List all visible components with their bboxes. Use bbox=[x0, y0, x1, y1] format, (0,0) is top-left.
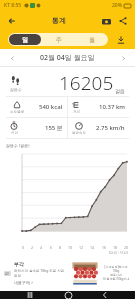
staticText: 걸음 bbox=[115, 88, 125, 94]
button[interactable]: 일 bbox=[9, 34, 41, 45]
staticText: 155 분 bbox=[45, 124, 63, 132]
staticText: 꽉찬사과 실속은 10kg 주문 사은 증정 bbox=[14, 268, 65, 278]
button[interactable]: Back bbox=[5, 14, 19, 28]
button[interactable]: 주 bbox=[43, 34, 74, 45]
staticText: 16205 bbox=[59, 70, 114, 96]
staticText: 20% bbox=[112, 2, 122, 9]
staticText: 부각 bbox=[14, 261, 24, 267]
staticText: 0 bbox=[22, 245, 25, 250]
staticText: 월 bbox=[89, 36, 95, 44]
staticText: 02월 04일 월요일 bbox=[40, 53, 95, 63]
staticText: 시간 bbox=[11, 131, 18, 135]
staticText: (단위 : 시간) bbox=[109, 250, 128, 255]
button[interactable]: Share bbox=[116, 14, 130, 28]
staticText: 12 bbox=[79, 245, 84, 250]
staticText: 2.75 km/h bbox=[96, 124, 125, 132]
button[interactable]: AD bbox=[0, 255, 135, 291]
button[interactable]: Back bbox=[97, 291, 113, 299]
staticText: 2 bbox=[31, 245, 34, 250]
staticText: 4 bbox=[40, 245, 43, 250]
button[interactable]: 시간 bbox=[6, 118, 67, 138]
staticText: AD bbox=[5, 272, 10, 276]
staticText: 20 bbox=[124, 245, 129, 250]
staticText: KT 8:55 bbox=[4, 2, 22, 9]
staticText: > bbox=[31, 280, 34, 285]
button[interactable]: Camera bbox=[99, 14, 113, 28]
staticText: 거리 bbox=[73, 110, 80, 114]
button[interactable]: Recents bbox=[22, 291, 38, 299]
staticText: 소모열량 bbox=[10, 110, 24, 114]
staticText: 6 bbox=[50, 245, 53, 250]
button[interactable]: Next day bbox=[117, 52, 129, 64]
button[interactable]: 평균속도 bbox=[68, 118, 129, 138]
staticText: 540 kcal bbox=[39, 103, 63, 111]
staticText: 10.37 km bbox=[99, 103, 125, 111]
button[interactable]: 월 bbox=[76, 34, 107, 45]
staticText: 10 bbox=[68, 245, 73, 250]
staticText: 주 bbox=[56, 36, 62, 44]
staticText: 16 bbox=[102, 245, 107, 250]
button[interactable]: Download bbox=[114, 33, 127, 46]
button[interactable]: Home bbox=[60, 291, 76, 299]
staticText: 8 bbox=[59, 245, 62, 250]
staticText: 통계 bbox=[52, 16, 66, 25]
staticText: 걸음수 bbox=[10, 87, 22, 92]
staticText: 내용구매 bbox=[14, 280, 30, 285]
button[interactable]: 소모열량 bbox=[6, 97, 67, 117]
staticText: 평균속도 bbox=[72, 131, 86, 135]
staticText: 일 bbox=[22, 36, 28, 44]
staticText: 14 bbox=[90, 245, 95, 250]
button[interactable]: 거리 bbox=[68, 97, 129, 117]
staticText: 18 bbox=[113, 245, 118, 250]
staticText: [사과농장]햇사과 10kg 영동사과 (주황색통)10kg이내 bbox=[101, 265, 131, 281]
staticText: 걸음수 (걸음) bbox=[6, 143, 30, 148]
button[interactable]: Previous day bbox=[6, 52, 18, 64]
